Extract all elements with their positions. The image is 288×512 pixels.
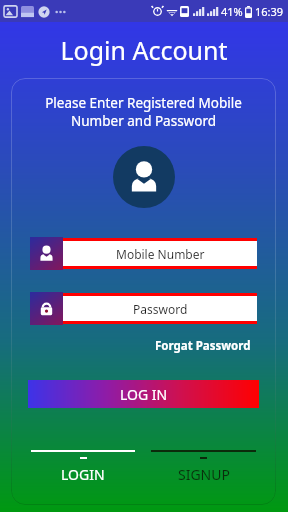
staticText: 41% (221, 4, 243, 19)
other: Password (30, 292, 63, 325)
staticText: 16:39 (255, 4, 284, 19)
button[interactable]: LOGIN (31, 450, 135, 484)
staticText: Please Enter Registered Mobile Number an… (45, 94, 242, 130)
button[interactable]: Password (30, 292, 257, 325)
staticText: LOG IN (120, 385, 168, 404)
staticText: Mobile Number (116, 246, 205, 262)
staticText: SIGNUP (178, 465, 230, 484)
staticText: Forgat Password (155, 338, 251, 354)
staticText: LOGIN (61, 465, 105, 484)
button[interactable]: LOG IN (28, 380, 259, 408)
button[interactable]: Mobile number (30, 237, 257, 270)
staticText: Login Account (60, 33, 228, 67)
other: Mobile number (30, 237, 63, 270)
staticText: Password (133, 301, 188, 317)
button[interactable]: SIGNUP (151, 450, 256, 484)
button[interactable]: Forgat Password (151, 334, 255, 358)
